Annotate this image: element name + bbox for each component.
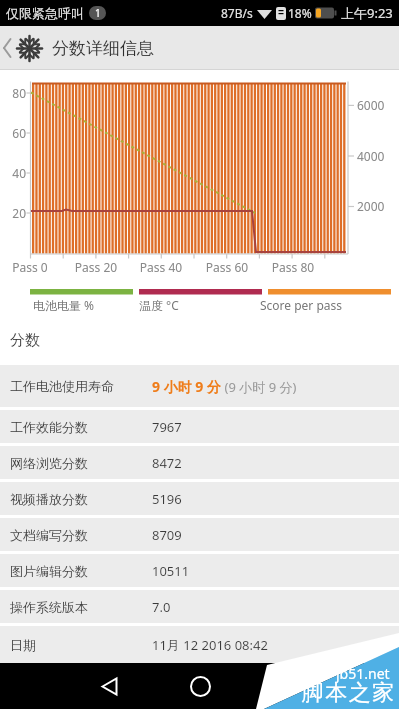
staticText: 分数详细信息 <box>52 38 154 59</box>
staticText: 7967 <box>152 418 182 436</box>
staticText: 87B/s <box>221 5 253 21</box>
button[interactable]: 日期 <box>0 626 399 663</box>
staticText: 7.0 <box>152 598 171 616</box>
button[interactable]: 工作电池使用寿命 <box>0 365 399 407</box>
staticText: 80 <box>0 85 26 101</box>
staticText: 4000 <box>357 148 385 164</box>
staticText: jb51.net <box>336 664 390 683</box>
staticText: Pass 60 <box>197 259 257 275</box>
staticText: 8709 <box>152 526 182 544</box>
button[interactable]: 视频播放分数 <box>0 482 399 515</box>
staticText: 10511 <box>152 562 190 580</box>
staticText: 40 <box>0 165 26 181</box>
button[interactable] <box>0 663 155 709</box>
button[interactable]: 操作系统版本 <box>0 590 399 623</box>
staticText: 1 <box>95 6 101 20</box>
staticText: 操作系统版本 <box>10 599 88 615</box>
staticText: 18% <box>288 5 312 21</box>
staticText: Pass 40 <box>131 259 191 275</box>
button[interactable]: 图片编辑分数 <box>0 554 399 587</box>
staticText: 6000 <box>357 97 385 113</box>
staticText: 图片编辑分数 <box>10 563 88 579</box>
button[interactable] <box>14 26 44 70</box>
button[interactable]: 网络浏览分数 <box>0 446 399 479</box>
staticText: 仅限紧急呼叫 <box>6 5 84 21</box>
staticText: Pass 0 <box>0 259 60 275</box>
staticText: 电池电量 % <box>33 297 95 313</box>
staticText: 上午9:23 <box>341 4 393 22</box>
button[interactable] <box>0 26 14 70</box>
staticText: 11月 12 2016 08:42 <box>152 636 268 654</box>
button[interactable] <box>155 663 245 709</box>
staticText: 9 小时 9 分 (9 小时 9 分) <box>152 377 297 396</box>
staticText: 网络浏览分数 <box>10 455 88 471</box>
staticText: Pass 20 <box>66 259 126 275</box>
staticText: 工作效能分数 <box>10 419 88 435</box>
staticText: 工作电池使用寿命 <box>10 378 114 394</box>
button[interactable]: 文档编写分数 <box>0 518 399 551</box>
button[interactable]: 工作效能分数 <box>0 410 399 443</box>
staticText: 2000 <box>357 198 385 214</box>
staticText: 20 <box>0 205 26 221</box>
staticText: 60 <box>0 125 26 141</box>
staticText: 脚本之家 <box>301 679 395 707</box>
staticText: 视频播放分数 <box>10 491 88 507</box>
staticText: Pass 80 <box>263 259 323 275</box>
staticText: 5196 <box>152 490 182 508</box>
staticText: 文档编写分数 <box>10 527 88 543</box>
staticText: 分数 <box>10 331 40 350</box>
staticText: 温度 °C <box>139 297 179 313</box>
staticText: 8472 <box>152 454 182 472</box>
staticText: 日期 <box>10 637 36 653</box>
staticText: Score per pass <box>260 297 343 313</box>
